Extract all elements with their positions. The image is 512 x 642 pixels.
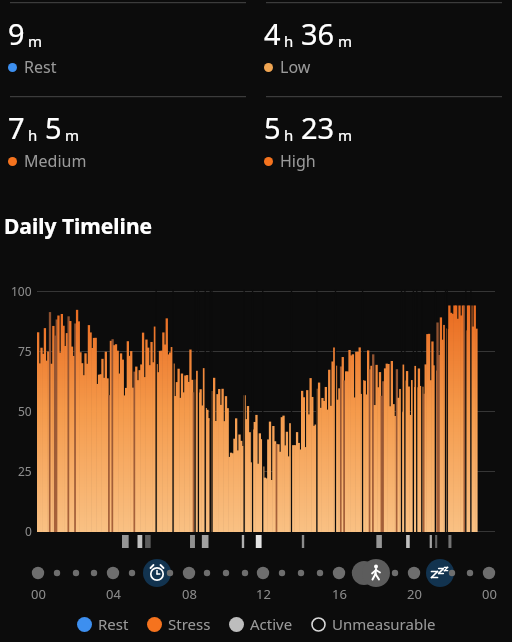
button[interactable]: Unmeasurable bbox=[311, 614, 436, 634]
button[interactable]: Active bbox=[229, 614, 293, 634]
button[interactable]: Stress bbox=[147, 614, 211, 634]
button[interactable]: Walking activity bbox=[362, 559, 390, 587]
button[interactable]: 7 bbox=[8, 108, 248, 172]
button[interactable]: Sleep bbox=[426, 559, 454, 587]
staticText: 75 bbox=[18, 343, 32, 359]
staticText: 23 bbox=[301, 108, 335, 147]
staticText: 7 bbox=[8, 108, 25, 147]
staticText: 36 bbox=[301, 14, 335, 53]
staticText: 25 bbox=[18, 463, 32, 479]
staticText: h bbox=[284, 31, 294, 51]
staticText: 08 bbox=[182, 585, 197, 603]
staticText: Active bbox=[250, 614, 293, 634]
staticText: 4 bbox=[264, 14, 281, 53]
staticText: 04 bbox=[106, 585, 121, 603]
staticText: Rest bbox=[24, 56, 57, 78]
staticText: 20 bbox=[407, 585, 422, 603]
button[interactable]: 4 bbox=[264, 14, 504, 78]
button[interactable]: 9 bbox=[8, 14, 248, 78]
staticText: Unmeasurable bbox=[332, 614, 436, 634]
staticText: 00 bbox=[31, 585, 46, 603]
staticText: 16 bbox=[332, 585, 347, 603]
button[interactable]: Rest bbox=[77, 614, 129, 634]
staticText: 100 bbox=[11, 283, 32, 299]
staticText: m bbox=[338, 125, 353, 145]
staticText: 50 bbox=[18, 403, 32, 419]
staticText: Stress bbox=[168, 614, 211, 634]
staticText: 9 bbox=[8, 14, 25, 53]
button[interactable]: 5 bbox=[264, 108, 504, 172]
staticText: 5 bbox=[264, 108, 281, 147]
staticText: h bbox=[284, 125, 294, 145]
staticText: 0 bbox=[25, 523, 32, 539]
staticText: High bbox=[280, 150, 316, 172]
staticText: h bbox=[28, 125, 38, 145]
staticText: Low bbox=[280, 56, 311, 78]
staticText: m bbox=[65, 125, 80, 145]
staticText: Rest bbox=[98, 614, 129, 634]
staticText: m bbox=[338, 31, 353, 51]
staticText: 5 bbox=[45, 108, 62, 147]
staticText: Medium bbox=[24, 150, 87, 172]
button[interactable]: Alarm bbox=[143, 559, 171, 587]
staticText: Daily Timeline bbox=[4, 212, 153, 241]
staticText: 00 bbox=[482, 585, 497, 603]
staticText: 12 bbox=[256, 585, 271, 603]
staticText: m bbox=[28, 31, 43, 51]
